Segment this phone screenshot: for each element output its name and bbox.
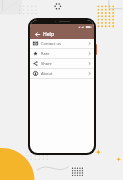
- staticText: Rate: [41, 51, 88, 56]
- button[interactable]: Rate: [30, 49, 94, 59]
- button[interactable]: Contact us: [30, 39, 94, 49]
- staticText: About: [41, 71, 88, 76]
- staticText: Share: [41, 61, 88, 66]
- button[interactable]: Share: [30, 59, 94, 69]
- staticText: Help: [43, 31, 55, 38]
- staticText: Contact us: [41, 41, 88, 46]
- button[interactable]: About: [30, 69, 94, 79]
- button[interactable]: Back: [33, 30, 41, 38]
